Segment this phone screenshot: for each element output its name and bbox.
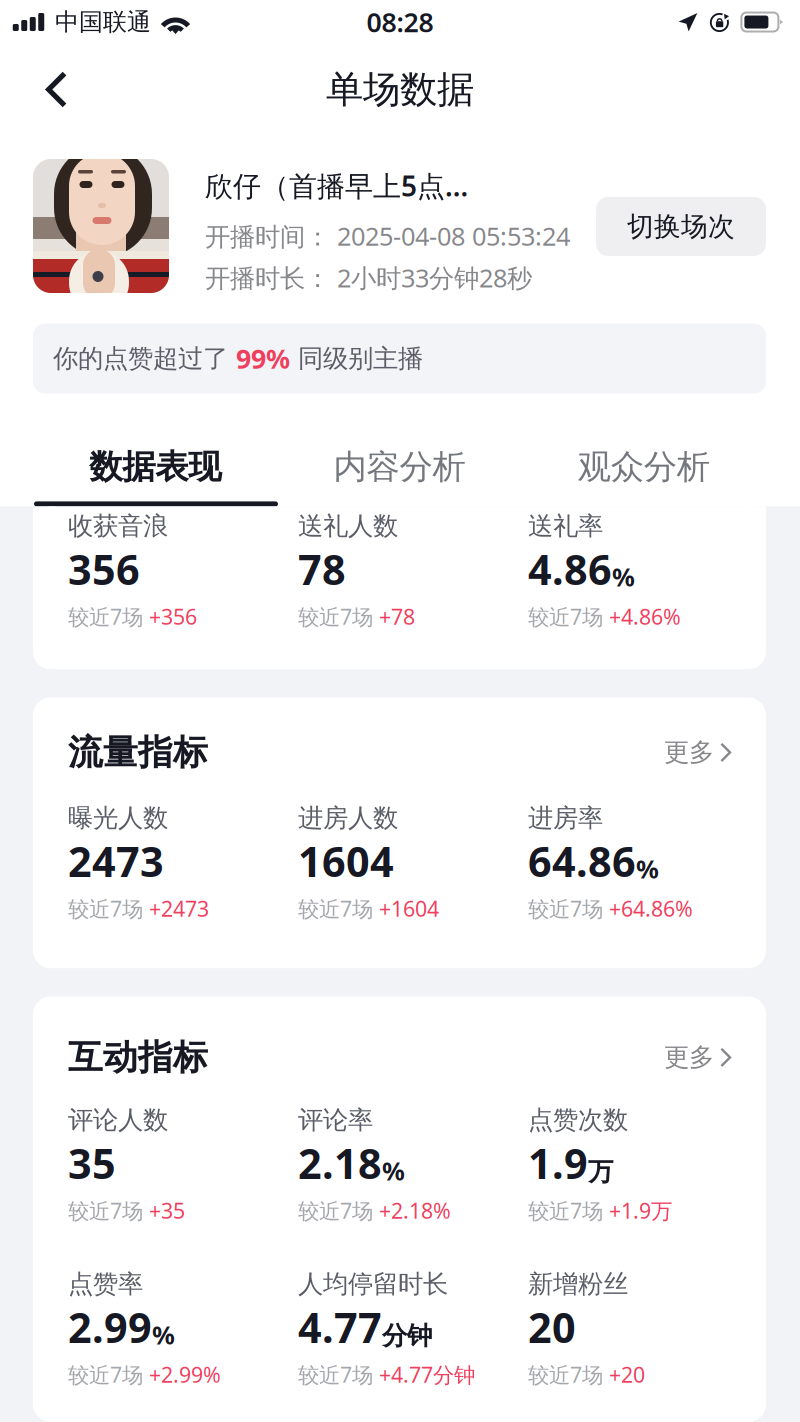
staticText: 中国联通 bbox=[55, 7, 151, 37]
staticText: 流量指标 bbox=[68, 731, 208, 774]
staticText: 64.86 bbox=[528, 833, 636, 888]
staticText: +356 bbox=[149, 602, 197, 631]
staticText: +20 bbox=[609, 1360, 645, 1389]
staticText: 曝光人数 bbox=[68, 802, 168, 833]
staticText: 更多 bbox=[664, 737, 714, 768]
staticText: 人均停留时长 bbox=[298, 1268, 448, 1299]
staticText: 内容分析 bbox=[333, 446, 465, 487]
staticText: 数据表现 bbox=[89, 446, 221, 487]
staticText: 较近7场 bbox=[68, 1360, 149, 1389]
staticText: % bbox=[612, 560, 635, 593]
staticText: +35 bbox=[149, 1196, 185, 1225]
staticText: 较近7场 bbox=[528, 1360, 609, 1389]
staticText: 评论人数 bbox=[68, 1104, 168, 1135]
button[interactable]: 更多 bbox=[664, 737, 732, 768]
staticText: 你的点赞超过了 bbox=[53, 343, 236, 374]
staticText: 2.18 bbox=[298, 1135, 382, 1190]
staticText: +78 bbox=[379, 602, 415, 631]
staticText: +4.77分钟 bbox=[379, 1360, 475, 1389]
staticText: 点赞率 bbox=[68, 1268, 143, 1299]
staticText: 同级别主播 bbox=[290, 343, 423, 374]
staticText: 更多 bbox=[664, 1042, 714, 1073]
staticText: 1604 bbox=[298, 833, 394, 888]
staticText: 4.86 bbox=[528, 541, 612, 596]
staticText: 2.99 bbox=[68, 1299, 152, 1354]
staticText: 较近7场 bbox=[528, 894, 609, 923]
staticText: +1604 bbox=[379, 894, 439, 923]
staticText: 78 bbox=[298, 541, 346, 596]
staticText: 收获音浪 bbox=[68, 510, 168, 541]
staticText: 进房人数 bbox=[298, 802, 398, 833]
staticText: +2.18% bbox=[379, 1196, 451, 1225]
button[interactable]: 更多 bbox=[664, 1042, 732, 1073]
button[interactable]: 切换场次 bbox=[596, 197, 766, 256]
staticText: 较近7场 bbox=[298, 1360, 379, 1389]
staticText: 分钟 bbox=[382, 1320, 432, 1351]
button[interactable]: 内容分析 bbox=[277, 446, 522, 487]
staticText: 单场数据 bbox=[326, 67, 474, 112]
staticText: 点赞次数 bbox=[528, 1104, 628, 1135]
staticText: 切换场次 bbox=[627, 210, 735, 243]
button[interactable]: 数据表现 bbox=[33, 446, 277, 487]
staticText: 观众分析 bbox=[578, 446, 710, 487]
staticText: +4.86% bbox=[609, 602, 681, 631]
staticText: 356 bbox=[68, 541, 140, 596]
staticText: 4.77 bbox=[298, 1299, 382, 1354]
staticText: +64.86% bbox=[609, 894, 693, 923]
staticText: % bbox=[382, 1154, 405, 1187]
staticText: 新增粉丝 bbox=[528, 1268, 628, 1299]
staticText: 欣仔（首播早上5点… bbox=[205, 167, 468, 204]
staticText: 送礼人数 bbox=[298, 510, 398, 541]
staticText: 评论率 bbox=[298, 1104, 373, 1135]
staticText: 较近7场 bbox=[68, 602, 149, 631]
staticText: 20 bbox=[528, 1299, 576, 1354]
staticText: 较近7场 bbox=[298, 1196, 379, 1225]
staticText: +2.99% bbox=[149, 1360, 221, 1389]
staticText: 99% bbox=[236, 341, 290, 376]
button[interactable]: Back bbox=[0, 57, 91, 122]
staticText: 08:28 bbox=[366, 4, 433, 40]
staticText: 开播时长： 2小时33分钟28秒 bbox=[205, 261, 532, 294]
staticText: +2473 bbox=[149, 894, 209, 923]
staticText: 开播时间： 2025-04-08 05:53:24 bbox=[205, 219, 570, 253]
staticText: 较近7场 bbox=[298, 894, 379, 923]
staticText: 万 bbox=[588, 1156, 613, 1187]
staticText: 2473 bbox=[68, 833, 164, 888]
staticText: 1.9 bbox=[528, 1135, 588, 1190]
staticText: 较近7场 bbox=[68, 1196, 149, 1225]
staticText: 较近7场 bbox=[298, 602, 379, 631]
staticText: 较近7场 bbox=[528, 602, 609, 631]
staticText: +1.9万 bbox=[609, 1196, 672, 1225]
staticText: 35 bbox=[68, 1135, 116, 1190]
button[interactable]: 观众分析 bbox=[522, 446, 766, 487]
staticText: 进房率 bbox=[528, 802, 603, 833]
staticText: 较近7场 bbox=[68, 894, 149, 923]
staticText: 互动指标 bbox=[68, 1036, 208, 1079]
staticText: % bbox=[152, 1318, 175, 1351]
staticText: 较近7场 bbox=[528, 1196, 609, 1225]
staticText: % bbox=[636, 852, 659, 885]
staticText: 送礼率 bbox=[528, 510, 603, 541]
